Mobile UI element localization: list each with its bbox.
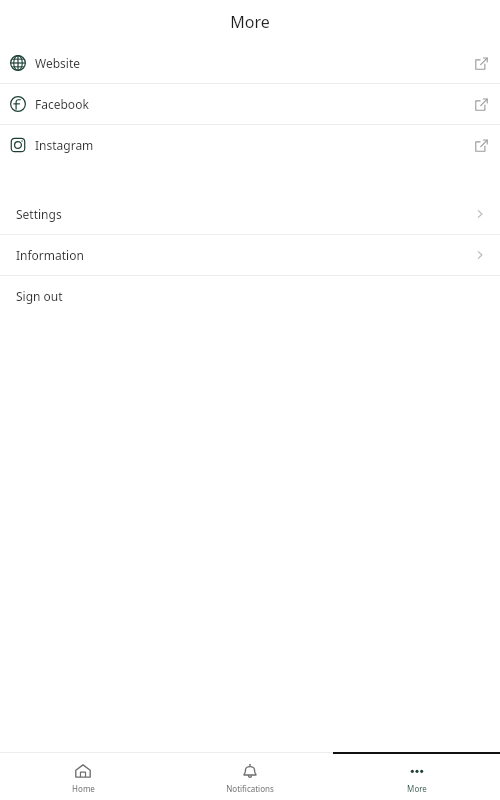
staticText: More [407,783,427,794]
staticText: Home [72,783,95,794]
button[interactable]: More [333,755,500,800]
button[interactable]: Website [0,43,500,83]
button[interactable]: Settings [0,194,500,234]
button[interactable]: Home [0,755,166,800]
staticText: More [230,11,270,33]
staticText: Settings [16,206,62,222]
staticText: Website [35,55,81,71]
staticText: Information [16,247,84,263]
staticText: Notifications [226,783,274,794]
button[interactable]: Sign out [0,276,500,316]
button[interactable]: Facebook [0,84,500,124]
staticText: Sign out [16,288,63,304]
staticText: Instagram [35,137,94,153]
staticText: Facebook [35,96,89,112]
button[interactable]: Notifications [166,755,333,800]
button[interactable]: Instagram [0,125,500,165]
button[interactable]: Information [0,235,500,275]
